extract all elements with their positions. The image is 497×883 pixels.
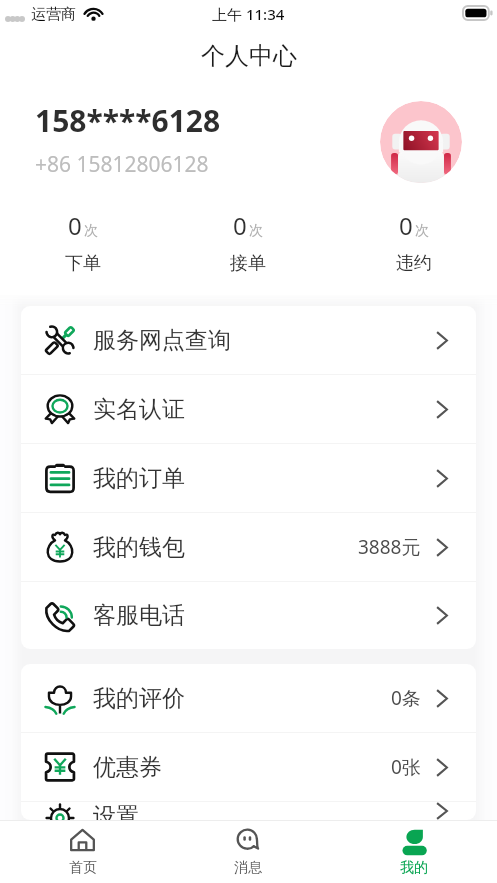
button[interactable]: 我的钱包 xyxy=(21,513,476,582)
staticText: 客服电话 xyxy=(93,601,185,630)
staticText: +86 15812806128 xyxy=(35,150,209,179)
staticText: 实名认证 xyxy=(93,395,185,424)
staticText: 0 xyxy=(399,209,413,242)
button[interactable]: 我的订单 xyxy=(21,444,476,513)
staticText: 3888元 xyxy=(358,534,421,560)
staticText: 0张 xyxy=(391,754,421,780)
button[interactable]: 0 xyxy=(331,200,497,295)
button[interactable]: 服务网点查询 xyxy=(21,306,476,375)
button[interactable]: 优惠券 xyxy=(21,733,476,802)
staticText: 我的 xyxy=(400,859,428,877)
staticText: 首页 xyxy=(69,859,97,877)
button[interactable]: 实名认证 xyxy=(21,375,476,444)
staticText: 上午 11:34 xyxy=(212,4,285,24)
staticText: 服务网点查询 xyxy=(93,326,231,355)
staticText: 0 xyxy=(68,209,82,242)
button[interactable]: 我的评价 xyxy=(21,664,476,733)
staticText: 接单 xyxy=(230,252,266,275)
staticText: 次 xyxy=(249,222,263,240)
button[interactable]: 0 xyxy=(0,200,165,295)
button[interactable]: 消息 xyxy=(165,821,331,883)
button[interactable]: 客服电话 xyxy=(21,582,476,649)
button[interactable]: 0 xyxy=(165,200,331,295)
staticText: 我的评价 xyxy=(93,684,185,713)
staticText: 我的订单 xyxy=(93,464,185,493)
button[interactable]: 首页 xyxy=(0,821,165,883)
staticText: 0条 xyxy=(391,685,421,711)
staticText: 个人中心 xyxy=(201,41,297,71)
button[interactable]: 设置 xyxy=(21,802,476,820)
staticText: 违约 xyxy=(396,252,432,275)
staticText: 下单 xyxy=(65,252,101,275)
staticText: 158****6128 xyxy=(35,100,221,141)
staticText: 运营商 xyxy=(31,5,76,24)
staticText: 次 xyxy=(84,222,98,240)
button[interactable]: 我的 xyxy=(331,821,497,883)
staticText: 设置 xyxy=(93,802,139,820)
staticText: 我的钱包 xyxy=(93,533,185,562)
button[interactable]: Avatar xyxy=(380,101,462,183)
staticText: 0 xyxy=(233,209,247,242)
staticText: 优惠券 xyxy=(93,753,162,782)
staticText: 消息 xyxy=(234,859,262,877)
staticText: 次 xyxy=(415,222,429,240)
